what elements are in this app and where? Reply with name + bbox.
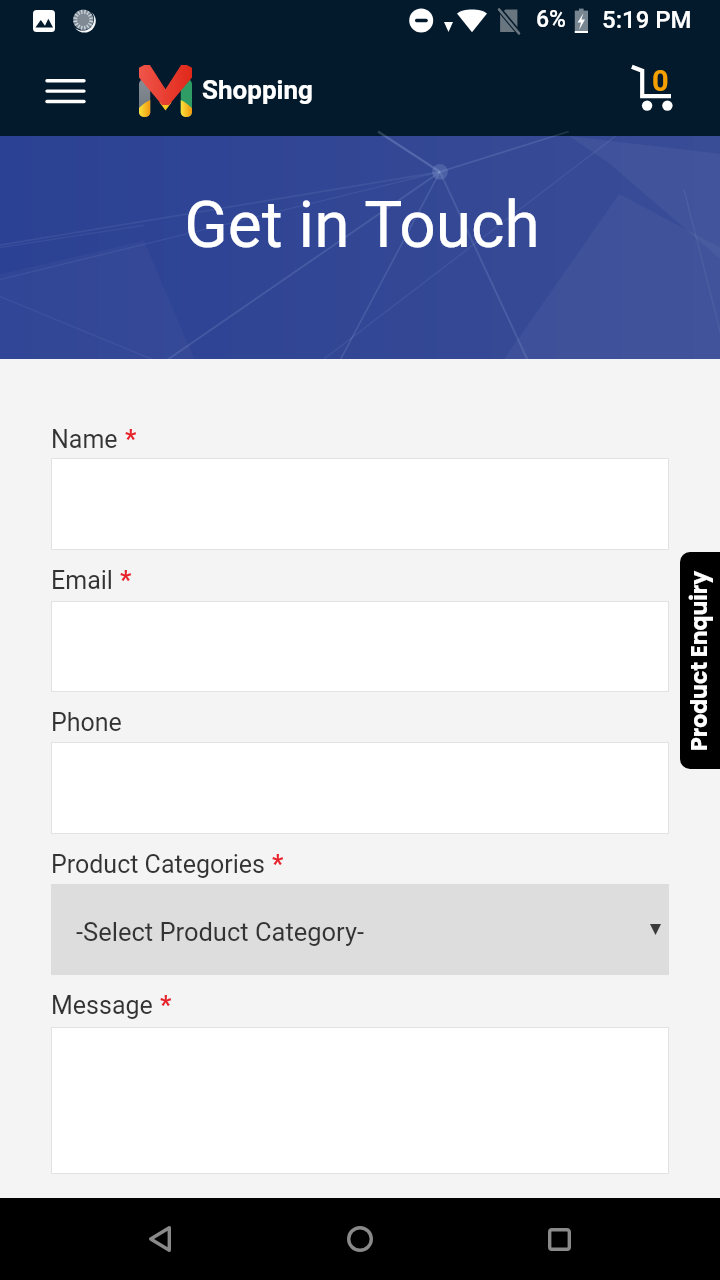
staticText: Email: [51, 566, 113, 595]
button[interactable]: Product Enquiry: [680, 552, 720, 769]
staticText: 0: [652, 64, 669, 98]
staticText: Product Categories: [51, 850, 265, 879]
staticText: -Select Product Category-: [76, 917, 365, 947]
button[interactable]: [51, 458, 669, 550]
button[interactable]: [51, 601, 669, 692]
staticText: Product Enquiry: [684, 570, 715, 751]
button[interactable]: [51, 1027, 669, 1174]
staticText: Name: [51, 425, 118, 454]
staticText: Get in Touch: [184, 188, 540, 263]
button[interactable]: Back: [130, 1209, 190, 1269]
staticText: *: [125, 425, 137, 454]
staticText: Shopping: [202, 75, 313, 105]
staticText: Message: [51, 991, 153, 1020]
button[interactable]: Open navigation menu: [34, 65, 96, 117]
button[interactable]: Home: [330, 1209, 390, 1269]
button[interactable]: Shopping cart, 0 items: [622, 58, 684, 124]
staticText: 6%: [536, 6, 566, 33]
button[interactable]: Shopping: [139, 46, 313, 136]
staticText: 5:19 PM: [602, 6, 692, 34]
button[interactable]: -Select Product Category-: [51, 884, 669, 975]
staticText: *: [120, 566, 132, 595]
staticText: *: [160, 991, 172, 1020]
button[interactable]: Recent apps: [529, 1209, 589, 1269]
staticText: *: [272, 850, 284, 879]
staticText: Phone: [51, 708, 122, 737]
button[interactable]: [51, 742, 669, 834]
